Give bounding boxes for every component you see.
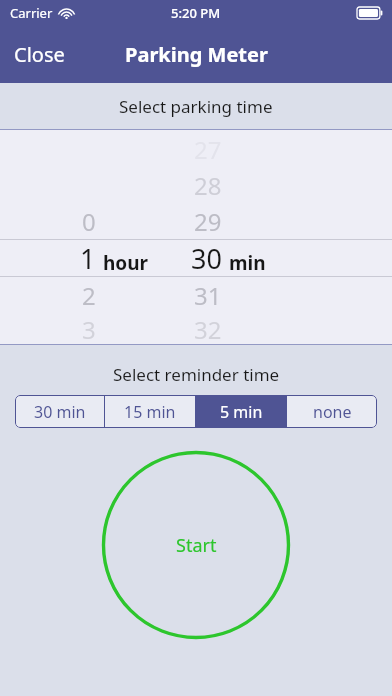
- staticText: 28: [194, 169, 222, 202]
- staticText: 5:20 PM: [171, 4, 221, 22]
- staticText: 0: [82, 205, 96, 238]
- staticText: Start: [176, 533, 217, 558]
- staticText: Select parking time: [119, 95, 273, 118]
- staticText: Select reminder time: [113, 363, 280, 386]
- staticText: 5 min: [220, 401, 263, 423]
- button[interactable]: 27: [0, 130, 392, 344]
- staticText: min: [229, 250, 266, 276]
- staticText: Carrier: [10, 4, 53, 22]
- staticText: none: [313, 401, 352, 423]
- staticText: 15 min: [124, 401, 176, 423]
- button[interactable]: Start: [101, 450, 291, 640]
- staticText: 27: [194, 133, 222, 166]
- button[interactable]: none: [287, 395, 377, 428]
- staticText: 29: [194, 205, 222, 238]
- staticText: Parking Meter: [125, 41, 268, 68]
- staticText: 1: [80, 240, 96, 276]
- staticText: hour: [103, 250, 149, 276]
- staticText: 30 min: [34, 401, 86, 423]
- staticText: 31: [194, 279, 222, 312]
- staticText: 3: [82, 313, 96, 344]
- button[interactable]: 30 min: [15, 395, 104, 428]
- staticText: 2: [82, 279, 96, 312]
- button[interactable]: 5 min: [196, 395, 286, 428]
- button[interactable]: Close: [0, 33, 79, 76]
- button[interactable]: 15 min: [105, 395, 195, 428]
- staticText: 30: [191, 240, 222, 276]
- staticText: 32: [194, 313, 222, 344]
- staticText: Close: [14, 41, 65, 68]
